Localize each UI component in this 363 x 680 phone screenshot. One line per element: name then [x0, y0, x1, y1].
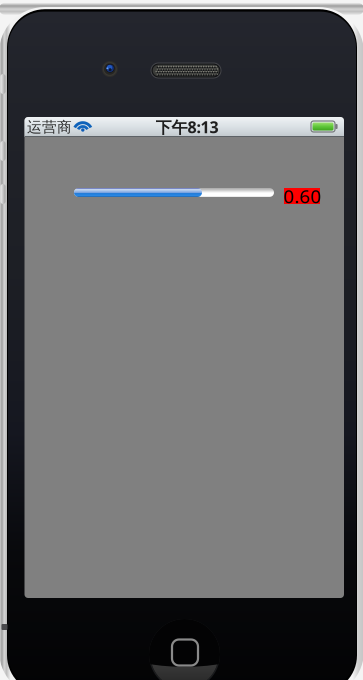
staticText: 下午8:13 — [155, 116, 218, 138]
staticText: 0.60 — [283, 184, 321, 208]
staticText: 运营商 — [27, 118, 72, 136]
